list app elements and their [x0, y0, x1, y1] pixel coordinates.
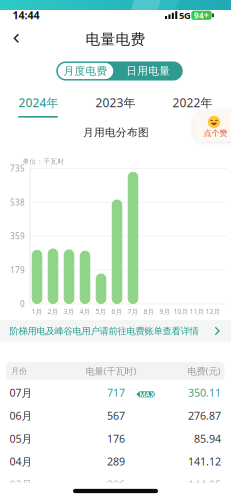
staticText: 9月 — [159, 307, 170, 316]
staticText: 03月 — [9, 477, 32, 491]
staticText: 7月 — [127, 307, 138, 316]
button[interactable]: 2024年 — [0, 94, 77, 110]
staticText: 3月 — [63, 307, 74, 316]
staticText: 141.12 — [188, 454, 221, 468]
staticText: 2024年 — [18, 94, 58, 110]
staticText: 94+ — [194, 10, 209, 21]
staticText: 144.05 — [188, 477, 221, 491]
staticText: 0 — [20, 299, 25, 309]
staticText: 567 — [107, 408, 125, 423]
staticText: 5G — [179, 9, 191, 21]
staticText: 5月 — [95, 307, 106, 316]
staticText: 11月 — [189, 307, 204, 316]
staticText: 14:44 — [12, 8, 39, 22]
button[interactable] — [9, 32, 23, 44]
staticText: 359 — [10, 231, 25, 241]
staticText: 6月 — [111, 307, 122, 316]
staticText: 阶梯用电及峰谷电用户请前往电费账单查看详情 — [9, 325, 198, 337]
staticText: 276.87 — [188, 408, 221, 423]
staticText: 05月 — [9, 431, 32, 446]
staticText: 8月 — [143, 307, 154, 316]
staticText: 179 — [10, 265, 25, 275]
staticText: 12月 — [205, 307, 220, 316]
button[interactable]: 月度电费 — [54, 61, 116, 80]
button[interactable]: 2022年 — [154, 94, 231, 110]
staticText: 电量(千瓦时) — [85, 365, 136, 377]
staticText: 735 — [10, 163, 25, 174]
staticText: 点个赞 — [203, 128, 227, 138]
staticText: 289 — [107, 454, 125, 468]
staticText: 电费(元) — [187, 365, 220, 377]
staticText: 2022年 — [172, 94, 212, 110]
staticText: 2023年 — [95, 94, 135, 110]
button[interactable]: 日用电量 — [117, 61, 179, 80]
staticText: 350.11 — [188, 386, 221, 400]
staticText: 1月 — [31, 307, 42, 316]
staticText: 176 — [107, 431, 125, 446]
staticText: 04月 — [9, 454, 32, 468]
staticText: MAX — [139, 390, 154, 399]
staticText: 月用电分布图 — [83, 126, 149, 139]
staticText: 538 — [10, 197, 25, 208]
staticText: 4月 — [79, 307, 90, 316]
button[interactable]: 点个赞 — [194, 111, 231, 141]
staticText: 日用电量 — [126, 64, 170, 77]
button[interactable]: 2023年 — [77, 94, 154, 110]
staticText: 06月 — [9, 408, 32, 423]
staticText: 单位：千瓦时 — [22, 157, 64, 166]
staticText: 296 — [107, 477, 125, 491]
staticText: 717 — [107, 386, 125, 400]
staticText: 2月 — [47, 307, 58, 316]
button[interactable]: 阶梯用电及峰谷电用户请前往电费账单查看详情 — [0, 320, 231, 341]
staticText: 月份 — [11, 366, 27, 376]
staticText: 月度电费 — [63, 64, 107, 77]
staticText: 07月 — [9, 386, 32, 400]
staticText: 85.94 — [194, 431, 221, 446]
staticText: 10月 — [173, 307, 188, 316]
staticText: 电量电费 — [85, 30, 145, 48]
